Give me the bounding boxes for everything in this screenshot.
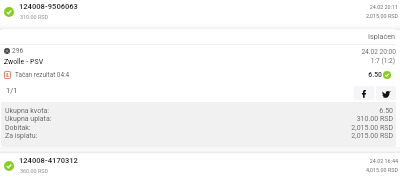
staticText: 24.02 20:11 [198,4,398,10]
staticText: Dobitak: [5,124,31,132]
staticText: 6.50 [193,107,393,115]
staticText: 2,015.00 RSD [198,13,398,19]
staticText: 310.00 RSD [20,14,48,20]
staticText: Za isplatu: [5,132,38,140]
staticText: Zwolle - PSV [4,58,44,66]
staticText: 24.02 16:44 [198,158,398,164]
staticText: Isplaćen [195,32,395,40]
staticText: 6.50 [182,71,382,79]
staticText: Ukupna kvota: [5,107,49,115]
staticText: 310.00 RSD [193,115,393,123]
staticText: 24.02 20:00 [196,48,396,56]
staticText: 4,015.00 RSD [198,167,398,173]
staticText: 1:7 (1:2) [195,57,395,65]
staticText: 1/1 [6,86,18,95]
button[interactable]: 124008-4170312 [0,154,400,182]
button[interactable]: 124008-9506063 [0,0,400,28]
staticText: 296 [12,47,24,55]
staticText: 124008-9506063 [19,2,78,11]
button[interactable]: Share on Facebook [354,86,374,100]
staticText: 2,015.00 RSD [193,124,393,132]
staticText: 124008-4170312 [19,156,78,165]
staticText: Tačan rezultat 04:4 [15,71,70,79]
staticText: Ukupna uplata: [5,115,52,123]
button[interactable]: Share on Twitter [376,86,396,100]
staticText: 2,015.00 RSD [193,132,393,140]
staticText: 360.00 RSD [20,168,48,174]
